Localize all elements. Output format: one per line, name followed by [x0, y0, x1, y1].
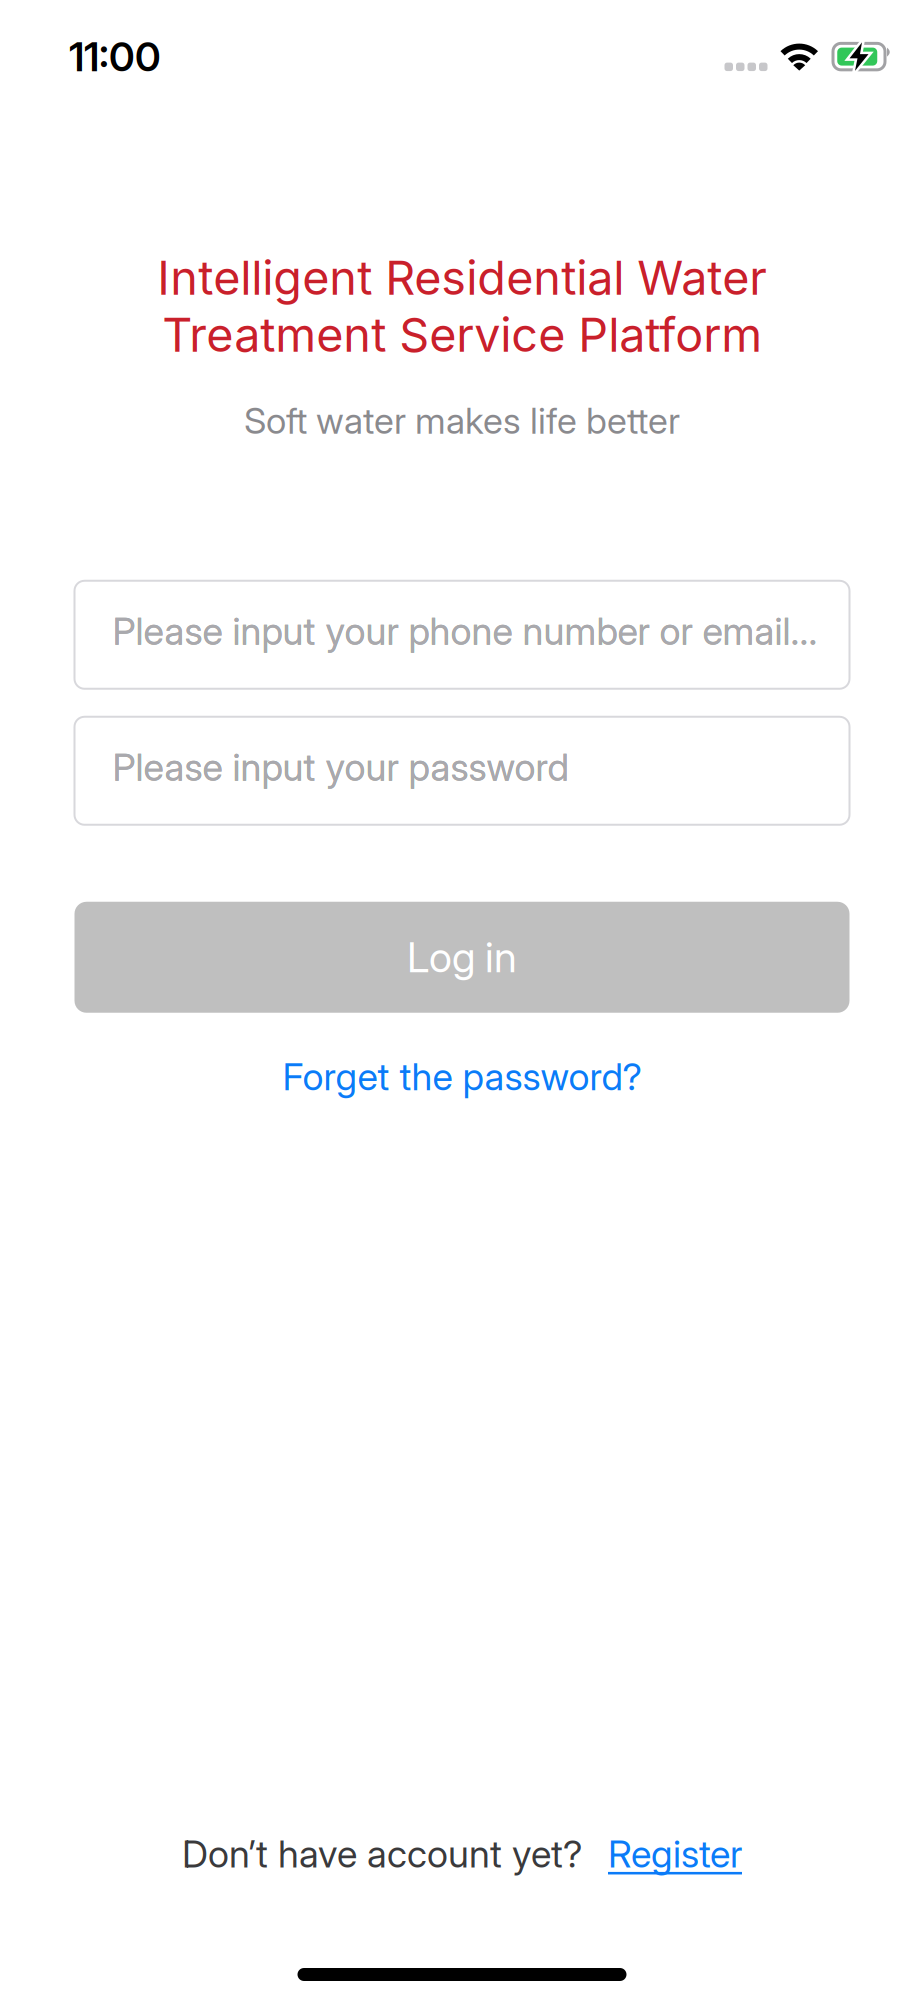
staticText: Log in — [407, 933, 517, 982]
staticText: Register — [608, 1832, 742, 1876]
button[interactable]: Forget the password? — [282, 1055, 641, 1099]
button[interactable]: Log in — [74, 902, 849, 1013]
textField[interactable]: Please input your phone number or email.… — [112, 609, 849, 653]
button[interactable]: Register — [608, 1832, 742, 1876]
staticText: Please input your password — [112, 745, 568, 789]
staticText: Please input your password — [112, 745, 568, 789]
staticText: Please input your phone number or email.… — [112, 609, 817, 653]
staticText: Forget the password? — [282, 1055, 641, 1099]
secureTextField[interactable]: Please input your password — [112, 745, 849, 789]
staticText: Soft water makes life better — [244, 399, 680, 442]
staticText: Intelligent Residential Water Treatment … — [157, 250, 767, 362]
staticText: 11:00 — [69, 33, 161, 80]
staticText: Please input your phone number or email.… — [112, 609, 817, 653]
staticText: Don’t have account yet? — [182, 1832, 582, 1876]
